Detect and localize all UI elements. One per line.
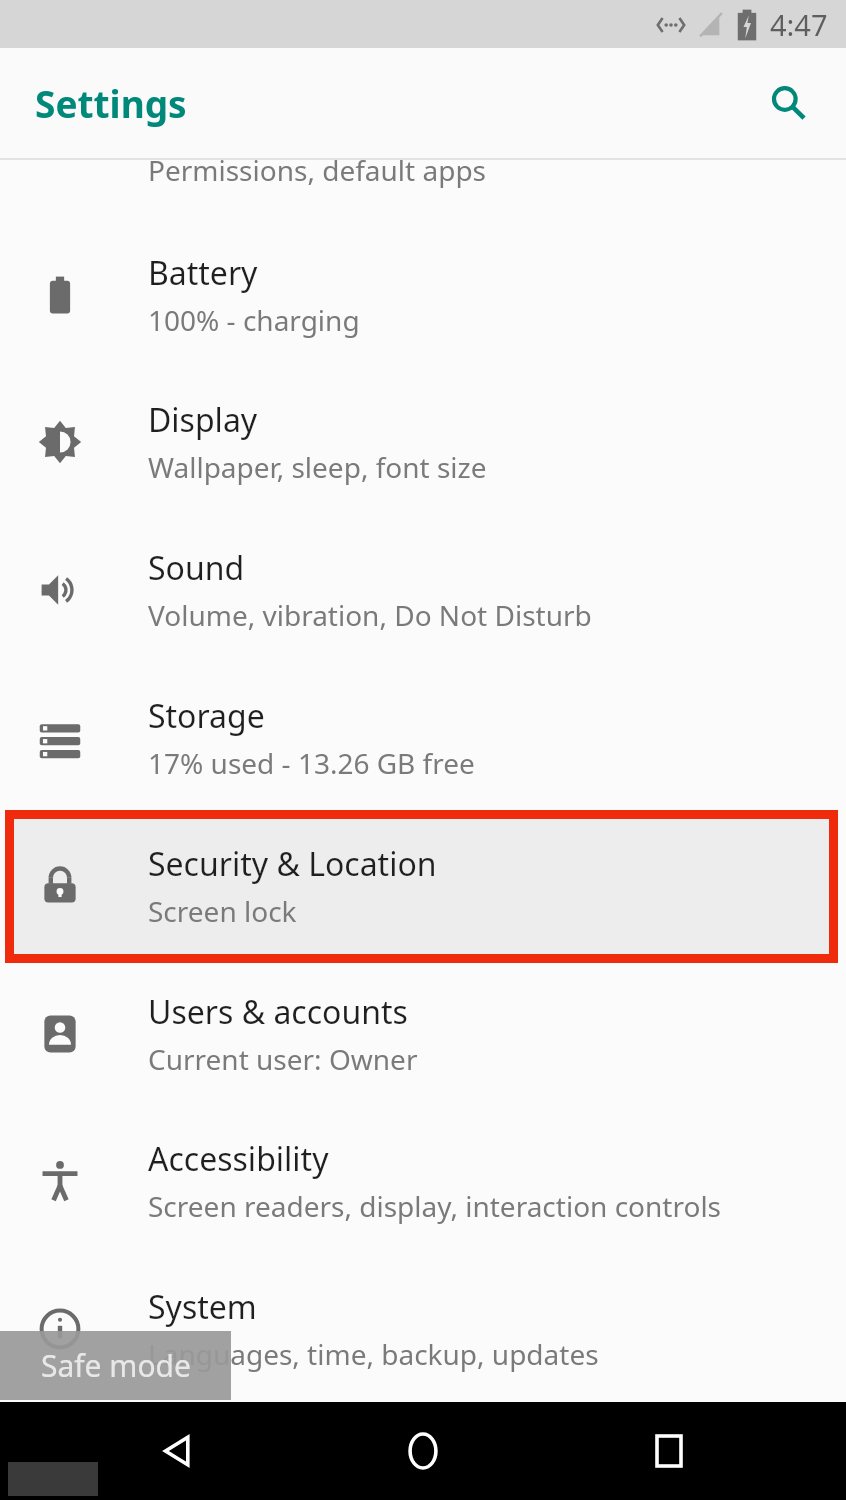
staticText: Screen lock [148,892,297,930]
button[interactable]: Recent apps [624,1406,714,1496]
staticText: Display [148,398,258,442]
staticText: 100% - charging [148,301,360,339]
staticText: Battery [148,251,258,295]
staticText: Volume, vibration, Do Not Disturb [148,596,592,634]
button[interactable]: Security & Location [0,818,846,954]
staticText: Accessibility [148,1137,329,1181]
staticText: Users & accounts [148,990,408,1034]
staticText: 4:47 [770,5,828,44]
button[interactable]: Display [0,374,846,510]
button[interactable]: System [0,1261,846,1397]
button[interactable]: Battery [0,227,846,363]
button[interactable]: Permissions, default apps [0,102,846,238]
staticText: Security & Location [148,842,437,886]
staticText: 17% used - 13.26 GB free [148,744,475,782]
staticText: Permissions, default apps [148,151,487,189]
button[interactable]: Back [132,1406,222,1496]
staticText: Sound [148,546,245,590]
button[interactable]: Users & accounts [0,966,846,1102]
staticText: Safe mode [41,1345,191,1386]
staticText: Current user: Owner [148,1040,418,1078]
staticText: Languages, time, backup, updates [148,1335,599,1373]
staticText: Screen readers, display, interaction con… [148,1187,722,1225]
staticText: System [148,1285,257,1329]
staticText: Storage [148,694,265,738]
staticText: Wallpaper, sleep, font size [148,448,487,486]
button[interactable]: Storage [0,670,846,806]
button[interactable]: Sound [0,522,846,658]
button[interactable]: Search [756,71,820,135]
button[interactable]: Home [378,1406,468,1496]
staticText: Settings [35,78,187,128]
button[interactable]: Accessibility [0,1113,846,1249]
